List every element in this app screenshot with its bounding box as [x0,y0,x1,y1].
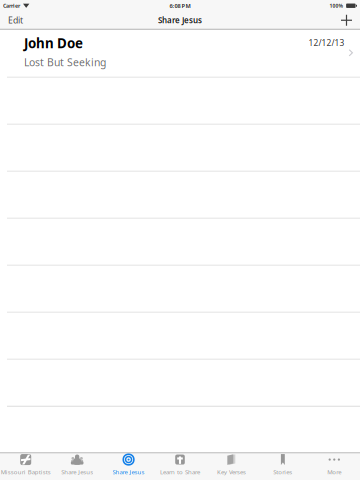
button[interactable]: Stories [257,453,308,480]
button[interactable]: Learn to Share [154,453,206,480]
button[interactable]: John Doe [0,30,360,77]
staticText: More [327,468,341,476]
button[interactable]: More [309,453,360,480]
button[interactable]: Key Verses [206,453,257,480]
staticText: Learn to Share [160,468,200,476]
staticText: 12/12/13 [309,37,345,48]
staticText: Share Jesus [61,468,93,476]
staticText: Missouri Baptists [1,468,51,476]
button[interactable]: Missouri Baptists [0,453,51,480]
button[interactable]: Edit [0,12,31,29]
staticText: 100% [330,2,344,9]
button[interactable]: Share Jesus [51,453,103,480]
staticText: John Doe [24,34,83,52]
button[interactable]: Share Jesus [103,453,154,480]
staticText: Edit [8,14,23,26]
staticText: Lost But Seeking [24,55,106,69]
staticText: Stories [273,468,292,476]
staticText: Share Jesus [158,15,202,26]
button[interactable]: Add [332,12,360,29]
staticText: Key Verses [217,468,246,476]
staticText: Share Jesus [113,468,145,476]
staticText: Carrier [3,2,20,9]
staticText: 6:08 PM [169,2,190,10]
